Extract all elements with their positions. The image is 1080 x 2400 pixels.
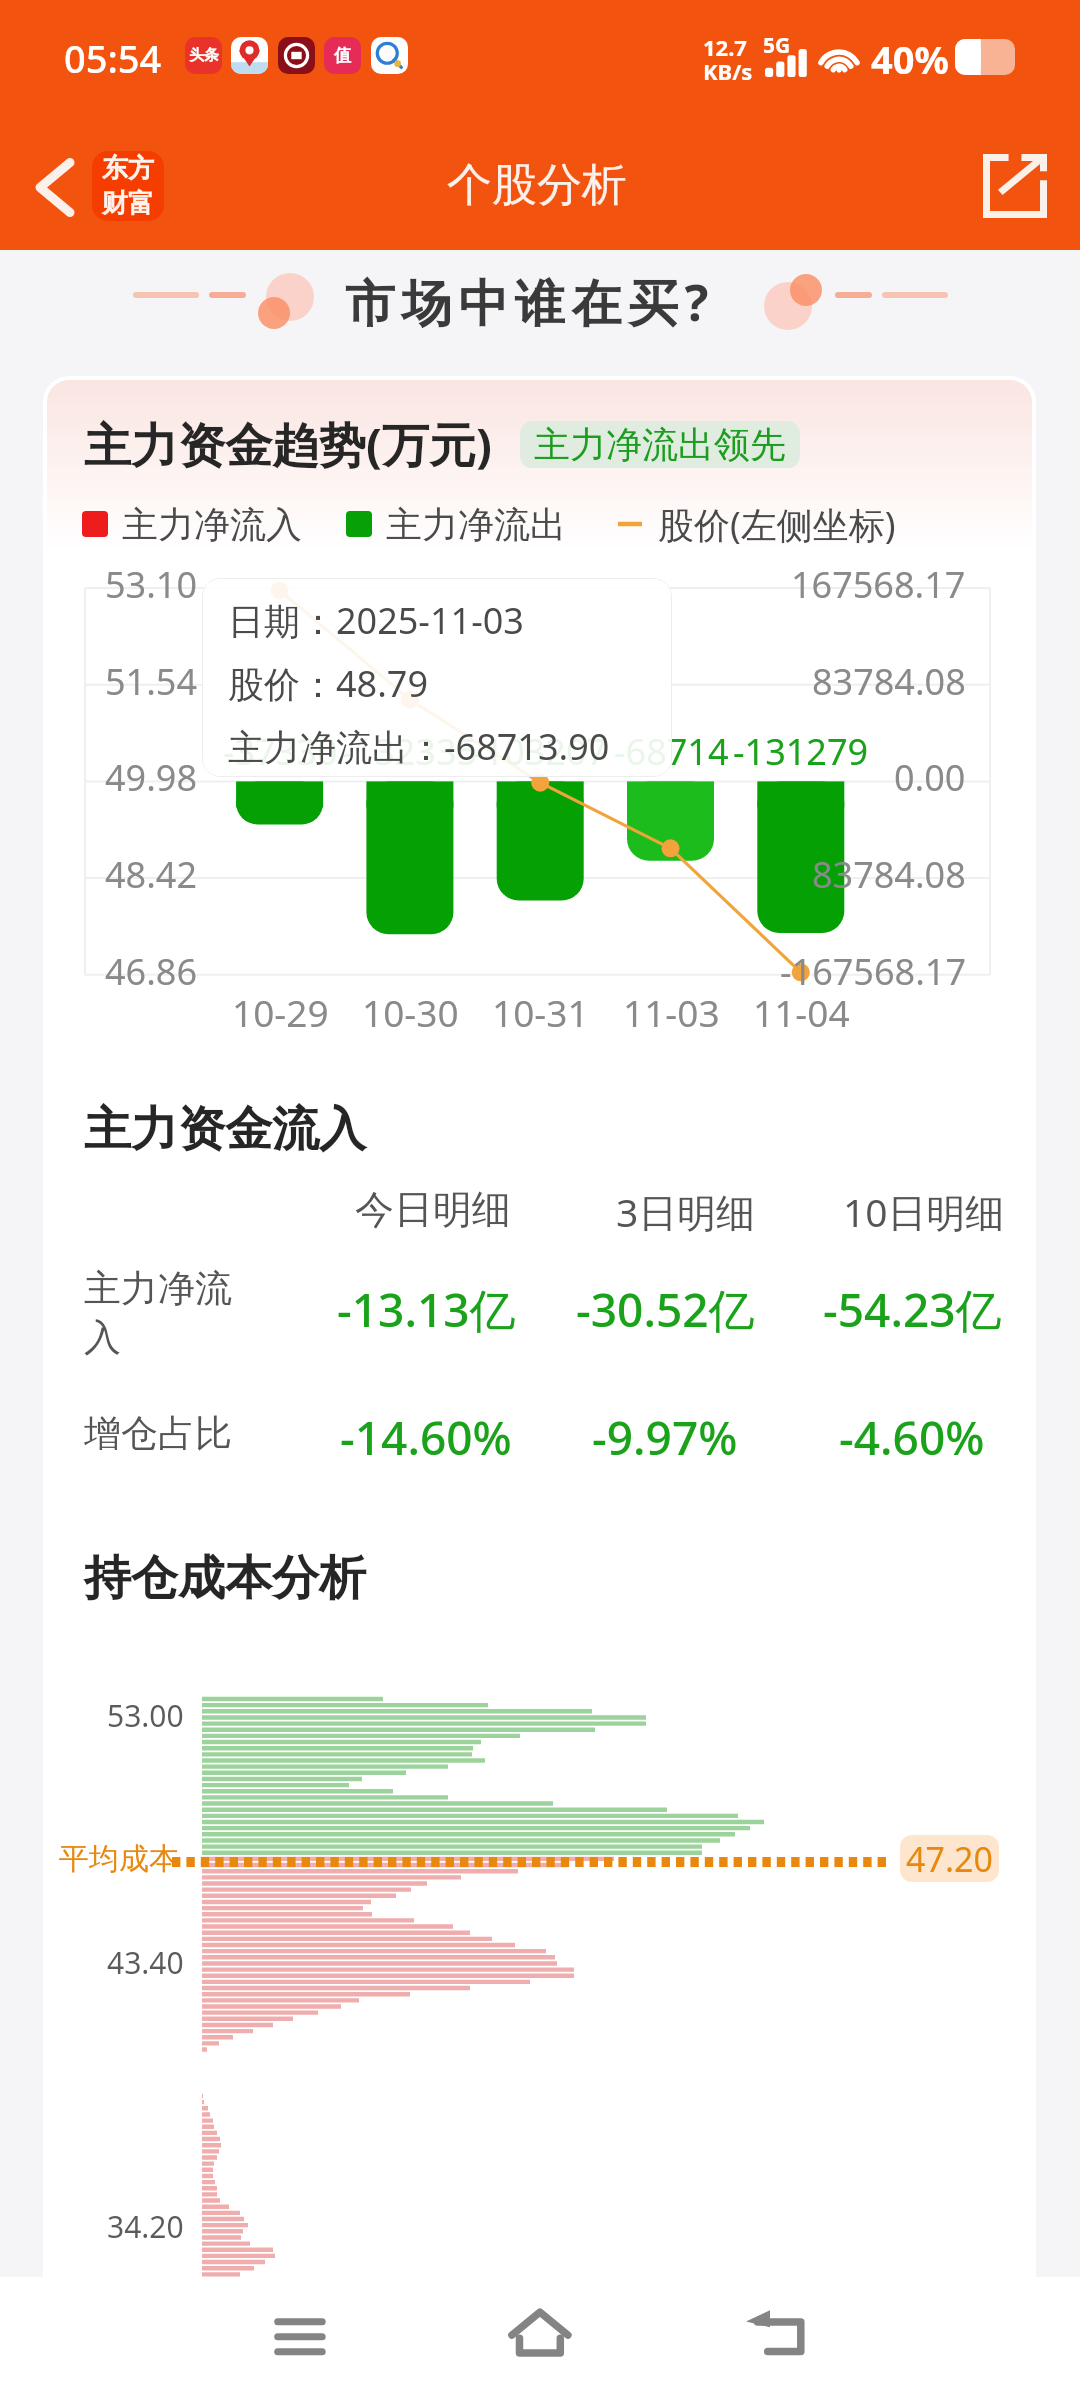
staticText: -9.97% [592,1406,738,1469]
button[interactable]: Back [24,147,86,227]
staticText: 12.7 [703,32,747,62]
staticText: -132335 [342,727,478,776]
staticText: -30.52亿 [576,1278,755,1341]
staticText: 主力净流出 [386,502,566,547]
staticText: 个股分析 [447,157,627,214]
staticText: 10-30 [362,987,459,1037]
staticText: 51.54 [105,657,198,706]
staticText: 46.86 [105,947,198,996]
staticText: 53.10 [105,560,198,609]
staticText: 今日明细 [355,1185,511,1234]
staticText: 11-03 [623,987,720,1037]
staticText: -131279 [733,727,869,776]
button[interactable]: Share [983,154,1047,218]
staticText: 11-04 [753,987,850,1037]
staticText: -37330 [223,727,338,776]
staticText: 主力净流 入 [84,1265,232,1361]
staticText: 日期：2025-11-03 [228,596,524,645]
staticText: KB/s [703,56,753,86]
staticText: 值 [334,45,351,66]
staticText: 股价：48.79 [228,659,429,708]
staticText: -167568.17 [780,947,966,996]
staticText: 增仓占比 [84,1410,232,1457]
staticText: 财富 [102,187,154,220]
staticText: 股价(左侧坐标) [658,500,896,548]
staticText: 10-29 [232,987,329,1037]
button[interactable]: Recents [240,2297,360,2381]
staticText: 0.00 [894,753,966,802]
button[interactable]: 东方财富 [92,151,164,221]
staticText: 头条 [189,46,219,65]
button[interactable]: Back [720,2297,840,2381]
staticText: 主力净流出：-68713.90 [228,722,610,771]
staticText: 47.20 [906,1836,993,1882]
staticText: 东方 [102,152,154,185]
staticText: 49.98 [105,753,198,802]
staticText: 40% [871,33,949,85]
staticText: 主力资金趋势(万元) [84,412,492,476]
staticText: 3日明细 [616,1185,756,1238]
staticText: -54.23亿 [823,1278,1002,1341]
button[interactable]: Home [480,2297,600,2381]
staticText: 主力资金流入 [84,1100,366,1159]
staticText: -68714 [614,727,729,776]
staticText: 5G [763,31,791,60]
staticText: -14.60% [340,1406,512,1469]
staticText: 48.42 [105,850,198,899]
staticText: 10日明细 [843,1185,1005,1238]
staticText: 市场中谁在买? [345,268,716,336]
staticText: 平均成本 [59,1840,179,1878]
staticText: 10-31 [492,987,589,1037]
staticText: 主力净流入 [122,502,302,547]
staticText: 83784.08 [812,657,966,706]
staticText: 167568.17 [791,560,966,609]
staticText: 83784.08 [812,850,966,899]
staticText: 53.00 [107,1695,184,1736]
staticText: 34.20 [107,2206,184,2247]
button[interactable]: 主力净流出领先 [534,421,786,468]
staticText: 持仓成本分析 [84,1549,366,1608]
staticText: -103207 [472,727,608,776]
staticText: 主力净流出领先 [534,422,786,467]
staticText: 05:54 [64,32,162,84]
staticText: -4.60% [839,1406,985,1469]
staticText: 43.40 [107,1942,184,1983]
staticText: -13.13亿 [337,1278,516,1341]
